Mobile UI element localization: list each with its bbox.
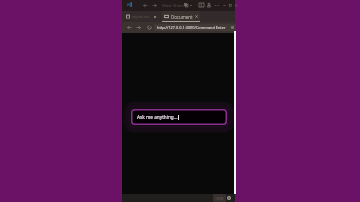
other: Account xyxy=(207,3,211,7)
other: More xyxy=(215,5,219,6)
staticText: 100% xyxy=(215,196,224,201)
other: Notifications xyxy=(227,196,231,200)
button[interactable]: Ask me anything... xyxy=(131,109,227,125)
other: Toggle panel xyxy=(199,3,204,7)
staticText: http://127.0.0.1:3000/Command Enter xyxy=(157,25,226,30)
staticText: styles.css xyxy=(132,14,150,19)
other: Back xyxy=(143,3,148,8)
staticText: Most Short xyxy=(162,3,184,9)
other: VS Code xyxy=(127,2,132,7)
staticText: Document xyxy=(171,14,193,20)
other: Close tab xyxy=(195,15,198,18)
staticText: Ask me anything... xyxy=(137,114,178,120)
button[interactable]: http://127.0.0.1:3000/Command Enter xyxy=(154,24,236,31)
button[interactable]: Document xyxy=(162,11,200,22)
other: Copilot xyxy=(184,3,188,7)
other: Forward xyxy=(152,3,157,8)
button[interactable]: 100% xyxy=(213,194,226,202)
other: Site settings xyxy=(231,26,234,29)
button[interactable]: styles.css xyxy=(122,11,163,22)
